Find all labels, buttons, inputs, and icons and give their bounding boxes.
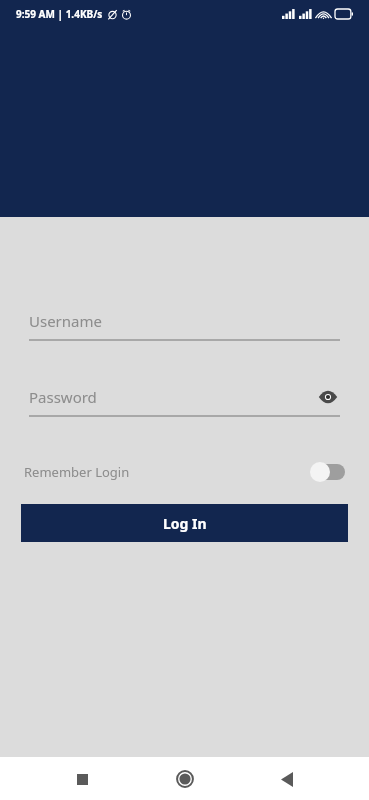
button[interactable]: Back bbox=[267, 759, 307, 799]
button[interactable]: Remember Login bbox=[0, 454, 369, 490]
staticText: Password bbox=[29, 387, 97, 407]
staticText: Log In bbox=[163, 514, 207, 533]
button[interactable]: Show password bbox=[316, 385, 340, 409]
button[interactable]: Log In bbox=[21, 504, 348, 542]
staticText: 9:59 AM | 1.4KB/s bbox=[16, 7, 103, 21]
button[interactable]: Password bbox=[29, 384, 340, 410]
button[interactable]: Home bbox=[165, 759, 205, 799]
button[interactable]: Remember Login toggle bbox=[309, 461, 347, 483]
button[interactable]: Recent apps bbox=[62, 759, 102, 799]
staticText: Remember Login bbox=[24, 463, 130, 481]
button[interactable]: Username bbox=[29, 308, 340, 334]
staticText: Username bbox=[29, 311, 102, 331]
